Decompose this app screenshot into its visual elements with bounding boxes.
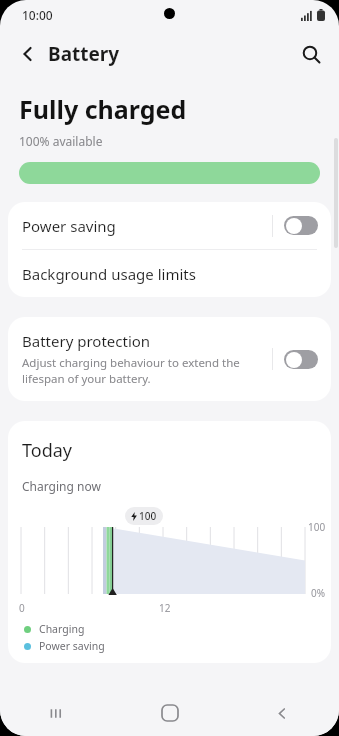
button[interactable]: Background usage limits xyxy=(8,250,331,297)
staticText: Adjust charging behaviour to extend the … xyxy=(22,355,268,386)
staticText: Power saving xyxy=(39,639,105,653)
staticText: 100 xyxy=(139,509,157,523)
staticText: 100% available xyxy=(19,133,103,149)
staticText: Background usage limits xyxy=(22,264,196,284)
staticText: Power saving xyxy=(22,216,272,236)
staticText: Battery xyxy=(48,41,120,67)
button[interactable]: Power saving xyxy=(8,202,331,249)
button[interactable]: Battery protection xyxy=(8,317,331,401)
button[interactable]: Toggle xyxy=(284,350,318,369)
button[interactable]: Back xyxy=(8,34,48,74)
staticText: 0 xyxy=(19,601,25,615)
staticText: Fully charged xyxy=(19,92,187,126)
button[interactable]: Recents xyxy=(0,690,113,736)
button[interactable]: Toggle xyxy=(284,216,318,235)
staticText: 10:00 xyxy=(22,7,53,23)
staticText: Charging now xyxy=(22,478,101,494)
staticText: 12 xyxy=(159,601,171,615)
button[interactable]: Home xyxy=(113,690,226,736)
staticText: 100 xyxy=(308,520,326,534)
staticText: Today xyxy=(22,438,72,463)
staticText: 0% xyxy=(311,586,326,600)
staticText: Charging xyxy=(39,622,85,636)
button[interactable]: Search xyxy=(291,34,331,74)
staticText: Battery protection xyxy=(22,331,151,351)
button[interactable]: Back xyxy=(226,690,339,736)
